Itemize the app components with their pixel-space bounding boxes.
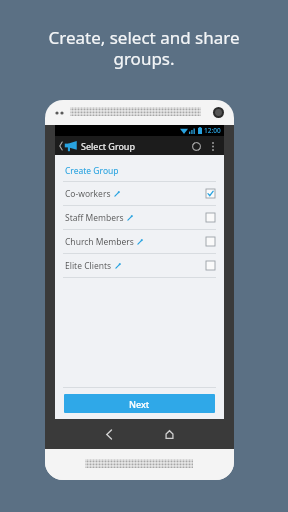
button[interactable]: Church Members — [55, 230, 224, 253]
staticText: Create, select and share groups. — [48, 26, 240, 70]
button[interactable]: Co-workers — [55, 182, 224, 205]
staticText: Create Group — [65, 165, 119, 177]
staticText: Staff Members — [65, 212, 124, 224]
staticText: Church Members — [65, 236, 134, 248]
staticText: Elite Clients — [65, 260, 112, 272]
button[interactable]: Home — [139, 419, 200, 449]
staticText: Co-workers — [65, 188, 111, 200]
button[interactable]: Create Group — [55, 161, 224, 181]
staticText: Select Group — [81, 140, 135, 152]
button[interactable]: Refresh — [188, 138, 204, 154]
button[interactable]: Back — [79, 419, 139, 449]
button[interactable]: Staff Members — [55, 206, 224, 229]
staticText: Next — [129, 398, 150, 410]
button[interactable]: Up — [58, 140, 78, 151]
button[interactable]: Next — [64, 394, 215, 413]
button[interactable]: More options — [206, 139, 220, 153]
staticText: 12:00 — [204, 126, 221, 135]
button[interactable]: Elite Clients — [55, 254, 224, 277]
